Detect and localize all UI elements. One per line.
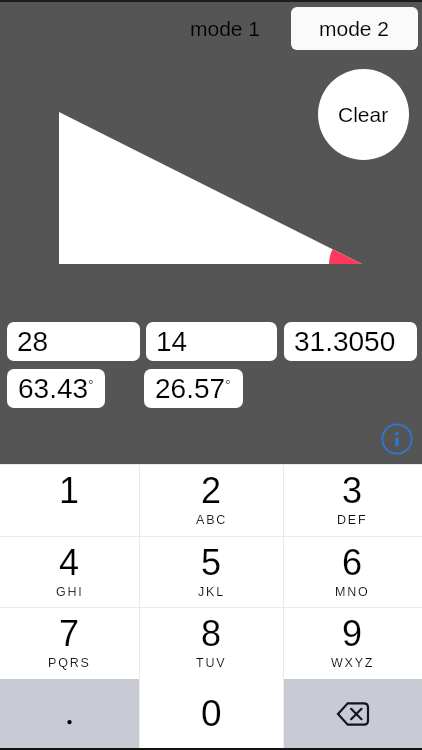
button[interactable]: Info — [380, 422, 413, 455]
staticText: 1 — [59, 470, 80, 510]
staticText: 8 — [201, 613, 222, 653]
staticText: 4 — [59, 542, 80, 582]
button[interactable]: 26.57° — [144, 369, 243, 408]
button[interactable]: 1 — [0, 464, 139, 536]
staticText: DEF — [337, 513, 368, 527]
staticText: 9 — [342, 613, 363, 653]
staticText: 28 — [17, 326, 49, 357]
staticText: 14 — [156, 326, 188, 357]
staticText: 5 — [201, 542, 222, 582]
staticText: 0 — [201, 693, 222, 734]
staticText: 3 — [342, 470, 363, 510]
staticText: WXYZ — [331, 656, 375, 670]
staticText: 63.43° — [18, 373, 94, 404]
button[interactable]: 14 — [146, 322, 277, 361]
button[interactable]: 63.43° — [7, 369, 105, 408]
button[interactable]: 7 — [0, 607, 139, 679]
button[interactable]: Decimal point — [0, 679, 139, 750]
button[interactable]: 9 — [283, 607, 422, 679]
staticText: 7 — [59, 613, 80, 653]
button[interactable]: 31.3050 — [284, 322, 417, 361]
staticText: ABC — [196, 513, 228, 527]
button[interactable]: 28 — [7, 322, 140, 361]
button[interactable]: 3 — [283, 464, 422, 536]
staticText: 26.57° — [155, 373, 231, 404]
button[interactable]: 2 — [139, 464, 284, 536]
staticText: MNO — [335, 585, 370, 599]
staticText: mode 1 — [190, 17, 261, 40]
staticText: 2 — [201, 470, 222, 510]
button[interactable]: mode 2 — [291, 7, 418, 50]
button[interactable]: 4 — [0, 536, 139, 608]
staticText: 31.3050 — [294, 326, 396, 357]
staticText: JKL — [198, 585, 225, 599]
button[interactable]: mode 1 — [186, 14, 265, 43]
button[interactable]: 0 — [139, 679, 284, 750]
staticText: GHI — [56, 585, 84, 599]
staticText: Clear — [338, 103, 389, 126]
staticText: mode 2 — [319, 17, 390, 40]
staticText: 6 — [342, 542, 363, 582]
staticText: TUV — [196, 656, 227, 670]
button[interactable]: 8 — [139, 607, 284, 679]
button[interactable]: 5 — [139, 536, 284, 608]
button[interactable]: Backspace — [283, 679, 422, 750]
staticText: PQRS — [48, 656, 91, 670]
button[interactable]: 6 — [283, 536, 422, 608]
button[interactable]: Clear — [318, 69, 409, 160]
